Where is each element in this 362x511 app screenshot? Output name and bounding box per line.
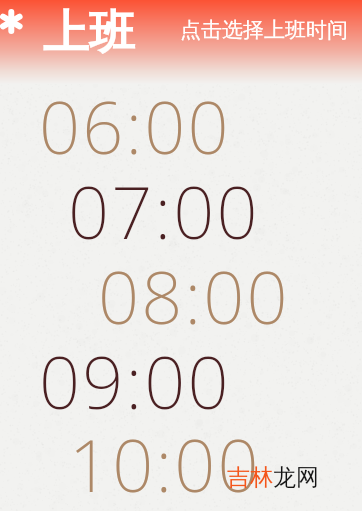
staticText: 07:00 (68, 162, 260, 247)
staticText: 点击选择上班时间 (180, 17, 348, 43)
button[interactable]: 06:00 (39, 77, 239, 162)
staticText: 龙网 (273, 463, 319, 492)
button[interactable]: 07:00 (68, 162, 268, 247)
button[interactable]: 08:00 (98, 247, 298, 332)
staticText: 上班 (43, 4, 135, 62)
staticText: 08:00 (98, 247, 290, 332)
staticText: 09:00 (39, 332, 231, 417)
button[interactable]: 09:00 (39, 332, 239, 417)
staticText: 10:00 (69, 415, 261, 500)
staticText: 06:00 (39, 77, 231, 162)
staticText: 吉林 (227, 463, 273, 492)
button[interactable]: 10:00 (69, 415, 269, 500)
